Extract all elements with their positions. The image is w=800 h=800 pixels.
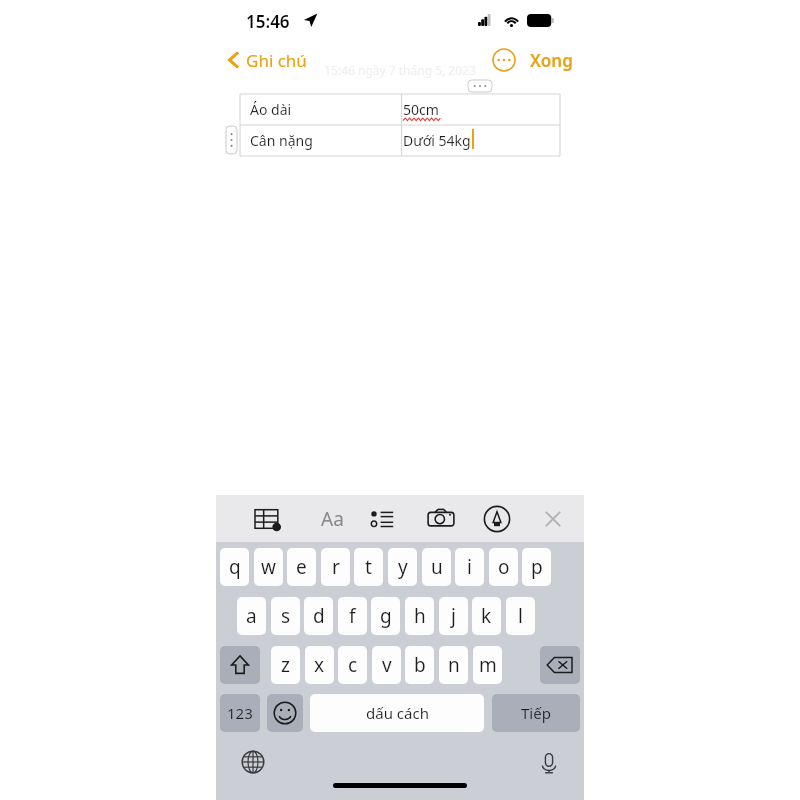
button[interactable]: l [506, 597, 535, 635]
button[interactable]: f [338, 597, 367, 635]
staticText: 15:46 [246, 10, 290, 33]
button[interactable]: x [305, 646, 334, 684]
button[interactable]: a [237, 597, 266, 635]
button[interactable]: Emoji [267, 694, 303, 732]
button[interactable]: u [422, 548, 451, 586]
staticText: Dưới 54kg [403, 131, 471, 150]
staticText: dấu cách [366, 703, 429, 723]
staticText: l [518, 603, 523, 629]
button[interactable]: p [522, 548, 551, 586]
button[interactable]: Markup [482, 504, 512, 534]
staticText: q [229, 554, 241, 580]
button[interactable]: 123 [220, 694, 260, 732]
staticText: x [314, 652, 325, 678]
button[interactable]: Column options [468, 80, 492, 92]
staticText: 15:46 ngày 7 tháng 5, 2023 [324, 62, 476, 78]
button[interactable]: Áo dài [240, 94, 560, 125]
button[interactable]: e [287, 548, 316, 586]
button[interactable]: Cân nặng [240, 125, 560, 156]
button[interactable]: Checklist [368, 504, 398, 534]
button[interactable]: Ghi chú [224, 42, 311, 78]
staticText: s [281, 603, 291, 629]
staticText: a [246, 603, 257, 629]
button[interactable]: Dictation [534, 747, 564, 777]
button[interactable]: Shift [220, 646, 260, 684]
button[interactable]: d [304, 597, 333, 635]
button[interactable]: q [220, 548, 249, 586]
staticText: Tiếp [521, 703, 551, 723]
staticText: r [332, 554, 340, 580]
button[interactable]: dấu cách [310, 694, 484, 732]
staticText: n [448, 652, 460, 678]
button[interactable]: Xong [526, 42, 577, 78]
staticText: b [414, 652, 426, 678]
staticText: 123 [227, 703, 253, 723]
button[interactable]: Close [538, 504, 568, 534]
button[interactable]: o [489, 548, 518, 586]
button[interactable]: More options [492, 48, 516, 72]
button[interactable]: Camera [426, 504, 456, 534]
button[interactable]: c [338, 646, 367, 684]
staticText: k [481, 603, 492, 629]
button[interactable]: y [388, 548, 417, 586]
staticText: w [261, 554, 276, 580]
staticText: z [281, 652, 290, 678]
button[interactable]: Backspace [540, 646, 580, 684]
button[interactable]: b [405, 646, 434, 684]
button[interactable]: z [271, 646, 300, 684]
staticText: Cân nặng [250, 131, 313, 150]
staticText: t [365, 554, 372, 580]
button[interactable]: Tiếp [492, 694, 580, 732]
button[interactable]: Change keyboard language [238, 747, 268, 777]
staticText: c [348, 652, 358, 678]
staticText: f [349, 603, 356, 629]
staticText: 50cm [403, 100, 439, 119]
staticText: Xong [530, 49, 573, 72]
button[interactable]: s [271, 597, 300, 635]
button[interactable]: i [455, 548, 484, 586]
button[interactable]: Aa [314, 504, 350, 534]
staticText: Áo dài [250, 100, 292, 119]
staticText: m [479, 652, 497, 678]
button[interactable]: g [371, 597, 400, 635]
staticText: i [467, 554, 472, 580]
staticText: o [498, 554, 510, 580]
staticText: v [382, 652, 392, 678]
staticText: j [451, 603, 456, 629]
button[interactable]: j [439, 597, 468, 635]
staticText: e [296, 554, 307, 580]
button[interactable]: k [472, 597, 501, 635]
button[interactable]: h [405, 597, 434, 635]
staticText: y [398, 554, 408, 580]
button[interactable]: n [439, 646, 468, 684]
button[interactable]: r [321, 548, 350, 586]
button[interactable]: Row options [226, 126, 237, 154]
staticText: u [431, 554, 443, 580]
staticText: g [380, 603, 392, 629]
button[interactable]: t [354, 548, 383, 586]
staticText: d [313, 603, 325, 629]
button[interactable]: m [473, 646, 502, 684]
button[interactable]: w [254, 548, 283, 586]
staticText: Ghi chú [246, 49, 307, 72]
staticText: p [531, 554, 543, 580]
staticText: h [414, 603, 426, 629]
button[interactable]: v [372, 646, 401, 684]
staticText: Aa [321, 506, 344, 532]
button[interactable]: Insert table [252, 504, 282, 534]
